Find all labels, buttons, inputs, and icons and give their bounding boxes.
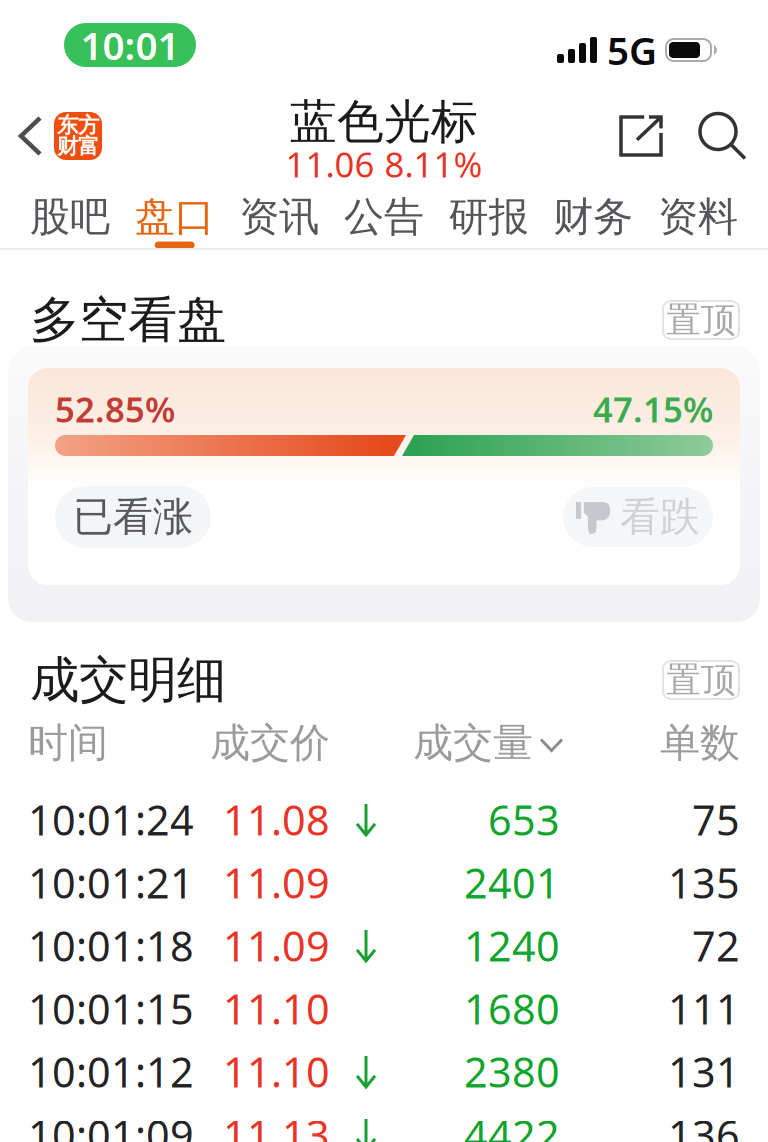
staticText: 资讯 <box>239 192 319 241</box>
staticText: 72 <box>692 918 740 973</box>
staticText: 11.09 <box>223 855 330 910</box>
staticText: 131 <box>668 1044 740 1099</box>
button[interactable]: 东方 <box>40 112 102 160</box>
staticText: 136 <box>668 1107 740 1142</box>
staticText: 2401 <box>464 855 560 910</box>
button[interactable] <box>661 113 768 158</box>
staticText: 资料 <box>658 192 738 241</box>
staticText: 1240 <box>464 918 560 973</box>
staticText: 11.09 <box>223 918 330 973</box>
staticText: 已看涨 <box>73 492 193 541</box>
button[interactable]: 盘口 <box>135 181 215 248</box>
staticText: 11.10 <box>223 1044 330 1099</box>
staticText: 公告 <box>344 192 424 241</box>
button[interactable]: 10:01 <box>64 23 196 67</box>
staticText: 成交价 <box>210 718 330 767</box>
staticText: 置顶 <box>666 299 736 341</box>
staticText: 52.85% <box>55 386 175 432</box>
staticText: 东方 <box>57 112 99 139</box>
button[interactable]: 财务 <box>553 181 633 248</box>
button[interactable]: 看跌 <box>563 487 713 547</box>
staticText: 10:01:21 <box>28 855 194 910</box>
staticText: 10:01:09 <box>28 1107 194 1142</box>
staticText: 111 <box>668 981 740 1036</box>
staticText: 研报 <box>449 192 529 241</box>
staticText: 10:01:24 <box>28 792 194 847</box>
button[interactable]: 已看涨 <box>55 486 211 548</box>
staticText: 135 <box>668 855 740 910</box>
staticText: 11.06 <box>285 141 374 187</box>
staticText: 成交明细 <box>30 650 226 710</box>
button[interactable]: 股吧 <box>30 181 110 248</box>
staticText: 8.11% <box>384 141 482 187</box>
staticText: 单数 <box>660 718 740 767</box>
staticText: 置顶 <box>666 659 736 701</box>
button[interactable] <box>621 117 661 155</box>
staticText: 2380 <box>464 1044 560 1099</box>
staticText: 11.13 <box>223 1107 330 1142</box>
staticText: 盘口 <box>135 192 215 241</box>
button[interactable]: 资料 <box>658 181 738 248</box>
button[interactable]: 资讯 <box>239 181 319 248</box>
staticText: 10:01:15 <box>28 981 194 1036</box>
staticText: 11.08 <box>223 792 330 847</box>
button[interactable]: 成交量 <box>413 718 562 767</box>
staticText: 财富 <box>57 133 99 160</box>
staticText: 股吧 <box>30 192 110 241</box>
staticText: 75 <box>692 792 740 847</box>
button[interactable]: 置顶 <box>662 660 740 700</box>
staticText: 653 <box>488 792 560 847</box>
button[interactable] <box>0 118 40 154</box>
staticText: 财务 <box>553 192 633 241</box>
staticText: 成交量 <box>413 718 533 767</box>
staticText: 看跌 <box>620 492 700 541</box>
button[interactable]: 置顶 <box>662 300 740 340</box>
staticText: 10:01:18 <box>28 918 194 973</box>
button[interactable]: 研报 <box>449 181 529 248</box>
staticText: 10:01 <box>80 19 179 71</box>
staticText: 10:01:12 <box>28 1044 194 1099</box>
staticText: 47.15% <box>593 386 713 432</box>
staticText: 蓝色光标 <box>290 93 478 151</box>
staticText: 11.10 <box>223 981 330 1036</box>
staticText: 多空看盘 <box>30 290 226 350</box>
staticText: 5G <box>607 24 657 76</box>
staticText: 时间 <box>28 718 108 767</box>
staticText: 4422 <box>464 1107 560 1142</box>
button[interactable]: 公告 <box>344 181 424 248</box>
staticText: 1680 <box>464 981 560 1036</box>
